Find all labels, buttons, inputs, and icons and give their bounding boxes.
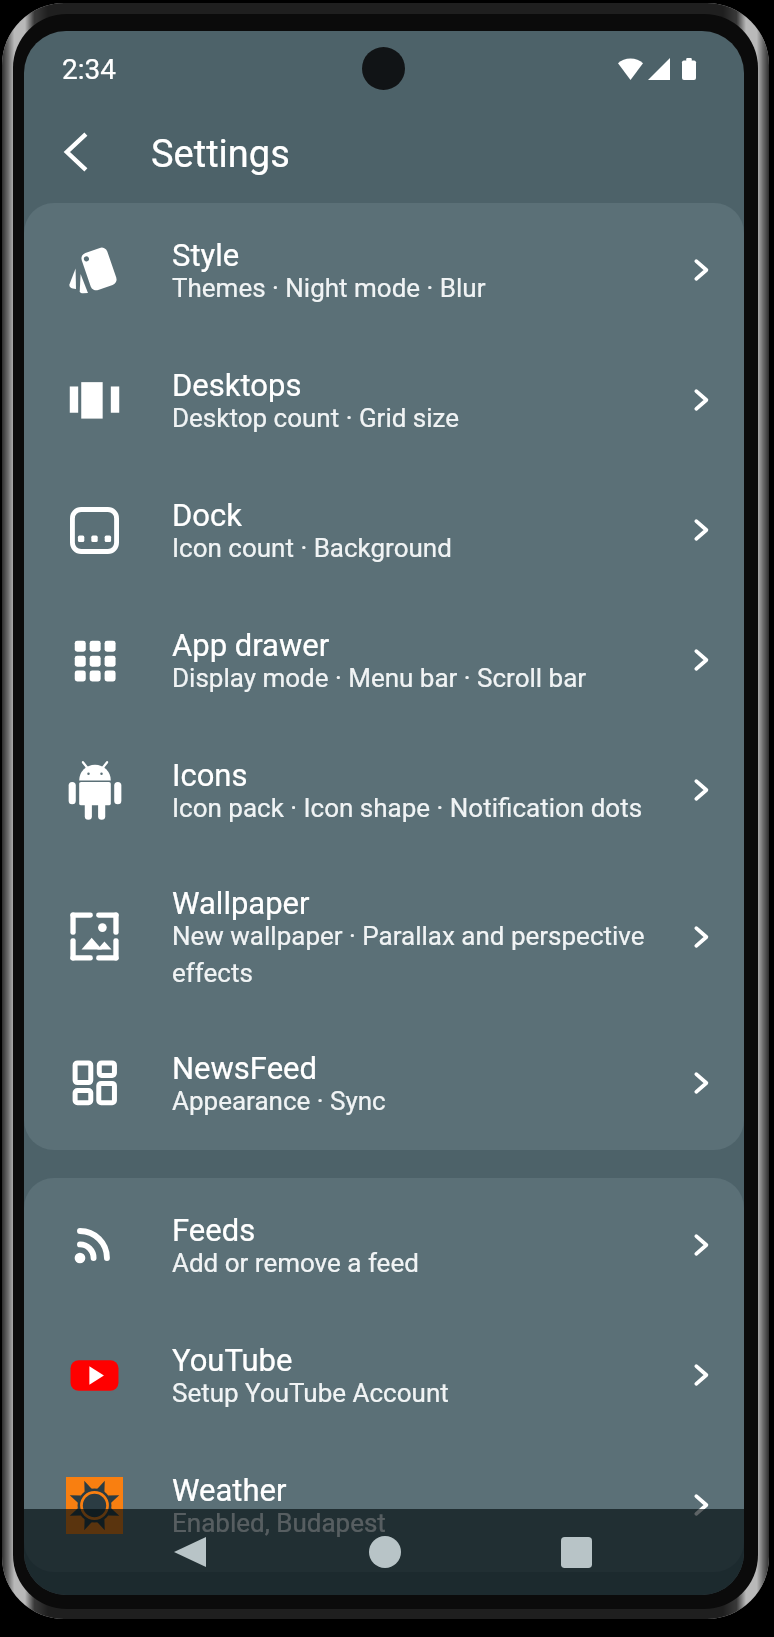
staticText: YouTube [172,1342,293,1378]
staticText: App drawer [172,627,330,663]
staticText: Wallpaper [172,885,310,921]
staticText: Icon count · Background [172,533,452,563]
staticText: 2:34 [62,53,116,86]
staticText: Settings [151,132,290,177]
button[interactable]: Style [24,205,744,335]
staticText: Appearance · Sync [172,1086,386,1116]
staticText: Desktop count · Grid size [172,403,460,433]
button[interactable]: Desktops [24,335,744,465]
button[interactable]: NewsFeed [24,1018,744,1148]
staticText: Desktops [172,367,302,403]
staticText: Display mode · Menu bar · Scroll bar [172,663,587,693]
button[interactable]: Feeds [24,1180,744,1310]
button[interactable]: Back [48,124,104,180]
button[interactable]: Back [152,1514,228,1590]
button[interactable]: Wallpaper [24,855,744,1018]
button[interactable]: YouTube [24,1310,744,1440]
staticText: Feeds [172,1212,256,1248]
staticText: NewsFeed [172,1050,318,1086]
button[interactable]: Dock [24,465,744,595]
staticText: Enabled, Budapest [172,1508,386,1538]
staticText: Icons [172,757,248,793]
staticText: New wallpaper · Parallax and perspective… [172,921,685,989]
staticText: Dock [172,497,242,533]
button[interactable]: Recents [538,1514,614,1590]
staticText: Style [172,237,240,273]
button[interactable]: Home [347,1514,423,1590]
staticText: Weather [172,1472,287,1508]
staticText: Add or remove a feed [172,1248,419,1278]
button[interactable]: App drawer [24,595,744,725]
staticText: Themes · Night mode · Blur [172,273,486,303]
staticText: Icon pack · Icon shape · Notification do… [172,793,643,823]
button[interactable]: Weather [24,1440,744,1570]
staticText: Setup YouTube Account [172,1378,449,1408]
button[interactable]: Icons [24,725,744,855]
